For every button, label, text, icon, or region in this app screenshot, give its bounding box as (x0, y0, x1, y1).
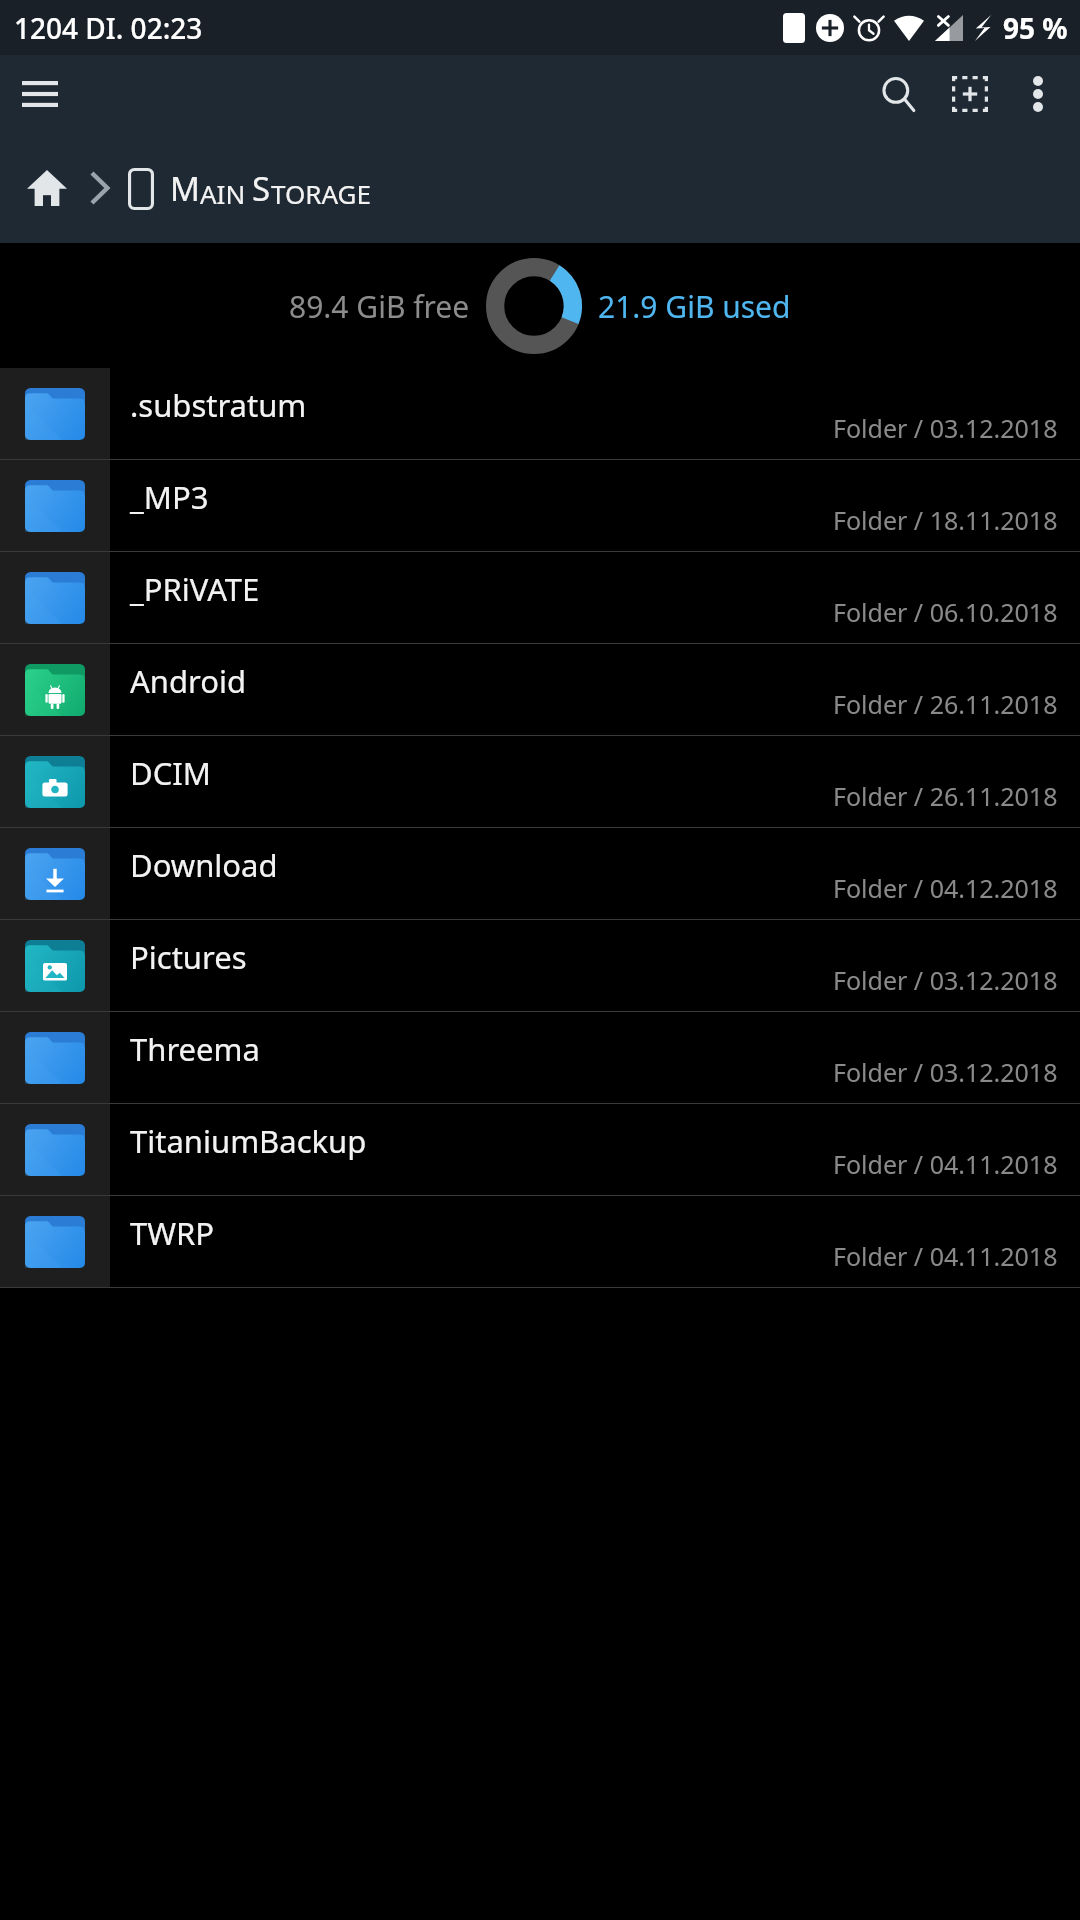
staticText: 21.9 GiB used (598, 286, 791, 327)
button[interactable]: _MP3 (0, 460, 1080, 551)
staticText: Pictures (130, 936, 247, 978)
staticText: TitaniumBackup (130, 1120, 367, 1162)
button[interactable]: Home (18, 159, 76, 217)
staticText: Folder / 26.11.2018 (833, 687, 1058, 721)
staticText: Folder / 18.11.2018 (833, 503, 1058, 537)
staticText: TORAGE (271, 176, 371, 211)
staticText: Android (130, 660, 247, 702)
button[interactable]: _PRiVATE (0, 552, 1080, 643)
staticText: M (170, 166, 200, 211)
staticText: Folder / 04.12.2018 (833, 871, 1058, 905)
staticText: 95 % (1003, 9, 1068, 47)
button[interactable]: Pictures (0, 920, 1080, 1011)
button[interactable]: .substratum (0, 368, 1080, 459)
staticText: AIN (200, 176, 252, 211)
button[interactable]: TitaniumBackup (0, 1104, 1080, 1195)
staticText: 1204 DI. 02:23 (14, 9, 203, 47)
staticText: .substratum (130, 384, 307, 426)
staticText: Folder / 06.10.2018 (833, 595, 1058, 629)
staticText: TWRP (130, 1212, 215, 1254)
staticText: Folder / 03.12.2018 (833, 963, 1058, 997)
staticText: Folder / 03.12.2018 (833, 411, 1058, 445)
button[interactable]: Download (0, 828, 1080, 919)
staticText: _PRiVATE (130, 568, 260, 610)
staticText: Folder / 04.11.2018 (833, 1239, 1058, 1273)
button[interactable]: Threema (0, 1012, 1080, 1103)
staticText: S (252, 166, 271, 211)
staticText: Folder / 03.12.2018 (833, 1055, 1058, 1089)
staticText: DCIM (130, 752, 211, 794)
staticText: Download (130, 844, 278, 886)
button[interactable]: More options (1006, 62, 1070, 126)
staticText: Threema (130, 1028, 260, 1070)
button[interactable]: Select all (934, 58, 1006, 130)
button[interactable]: Open navigation drawer (8, 62, 72, 126)
staticText: Folder / 04.11.2018 (833, 1147, 1058, 1181)
button[interactable]: DCIM (0, 736, 1080, 827)
button[interactable]: M (128, 166, 371, 211)
button[interactable]: Android (0, 644, 1080, 735)
button[interactable]: TWRP (0, 1196, 1080, 1287)
staticText: 89.4 GiB free (289, 286, 470, 327)
button[interactable]: Search (862, 58, 934, 130)
staticText: Folder / 26.11.2018 (833, 779, 1058, 813)
staticText: _MP3 (130, 476, 209, 518)
